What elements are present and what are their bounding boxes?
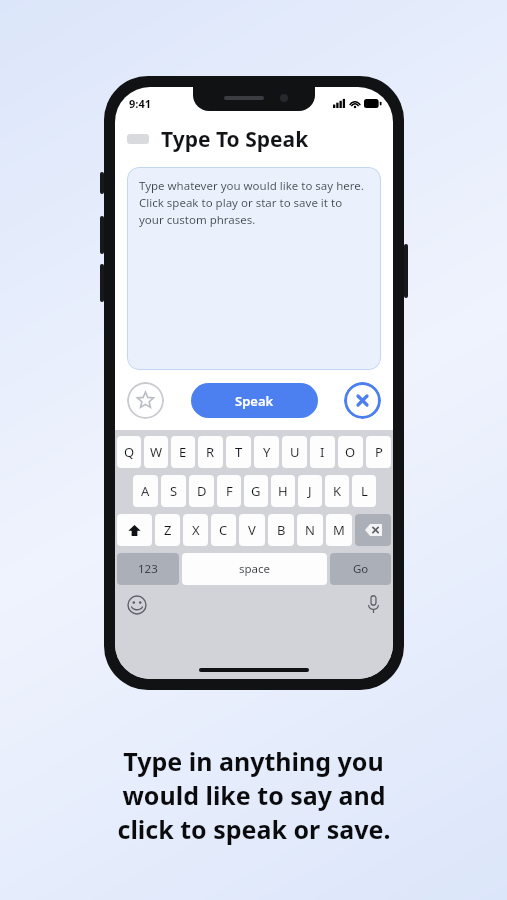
staticText: J	[308, 482, 312, 500]
button[interactable]: M	[326, 514, 352, 546]
button[interactable]: S	[161, 475, 186, 507]
button[interactable]: Menu	[127, 134, 149, 144]
staticText: T	[235, 443, 243, 461]
staticText: would like to say and	[122, 778, 386, 812]
button[interactable]: N	[297, 514, 323, 546]
button[interactable]: Y	[254, 436, 279, 468]
button[interactable]: Shift	[117, 514, 152, 546]
staticText: Y	[263, 443, 271, 461]
button[interactable]: D	[189, 475, 214, 507]
button[interactable]: Type whatever you would like to say here…	[127, 167, 381, 370]
staticText: A	[141, 482, 150, 500]
staticText: F	[226, 482, 233, 500]
button[interactable]: X	[183, 514, 208, 546]
button[interactable]: Clear	[344, 382, 381, 419]
button[interactable]: U	[282, 436, 307, 468]
staticText: 9:41	[129, 96, 151, 111]
button[interactable]: J	[298, 475, 322, 507]
button[interactable]: Speak	[191, 383, 318, 418]
button[interactable]: Backspace	[355, 514, 391, 546]
button[interactable]: V	[239, 514, 265, 546]
button[interactable]: A	[133, 475, 158, 507]
staticText: S	[170, 482, 178, 500]
button[interactable]: Z	[155, 514, 180, 546]
button[interactable]: Dictate	[367, 595, 380, 614]
staticText: W	[150, 443, 163, 461]
button[interactable]: O	[338, 436, 363, 468]
staticText: click to speak or save.	[117, 812, 391, 846]
staticText: D	[197, 482, 207, 500]
button[interactable]: P	[366, 436, 391, 468]
button[interactable]: I	[310, 436, 335, 468]
button[interactable]: R	[198, 436, 223, 468]
button[interactable]: E	[171, 436, 195, 468]
staticText: Type in anything you	[123, 744, 384, 778]
staticText: V	[248, 521, 256, 539]
staticText: Speak	[235, 392, 274, 410]
staticText: K	[333, 482, 342, 500]
button[interactable]: W	[144, 436, 168, 468]
staticText: I	[320, 443, 325, 461]
staticText: R	[206, 443, 215, 461]
button[interactable]: F	[217, 475, 241, 507]
button[interactable]: K	[325, 475, 349, 507]
staticText: O	[345, 443, 356, 461]
button[interactable]: Save phrase	[127, 382, 164, 419]
button[interactable]: L	[352, 475, 376, 507]
staticText: N	[305, 521, 315, 539]
staticText: Z	[164, 521, 172, 539]
button[interactable]: B	[268, 514, 294, 546]
button[interactable]: 123	[117, 553, 179, 585]
staticText: Go	[353, 561, 369, 577]
staticText: 123	[138, 561, 158, 577]
button[interactable]: Emoji	[127, 595, 147, 615]
staticText: E	[179, 443, 187, 461]
button[interactable]: G	[244, 475, 268, 507]
staticText: U	[290, 443, 300, 461]
staticText: H	[278, 482, 288, 500]
button[interactable]: Q	[117, 436, 141, 468]
staticText: B	[277, 521, 286, 539]
button[interactable]: C	[211, 514, 236, 546]
staticText: C	[219, 521, 228, 539]
staticText: Type whatever you would like to say here…	[139, 178, 369, 228]
staticText: G	[251, 482, 261, 500]
staticText: Type To Speak	[161, 125, 309, 154]
staticText: P	[375, 443, 383, 461]
staticText: Q	[124, 443, 135, 461]
staticText: M	[333, 521, 345, 539]
staticText: X	[192, 521, 200, 539]
staticText: L	[361, 482, 368, 500]
staticText: space	[239, 561, 271, 577]
button[interactable]: space	[182, 553, 327, 585]
button[interactable]: H	[271, 475, 295, 507]
button[interactable]: Go	[330, 553, 391, 585]
button[interactable]: T	[226, 436, 251, 468]
